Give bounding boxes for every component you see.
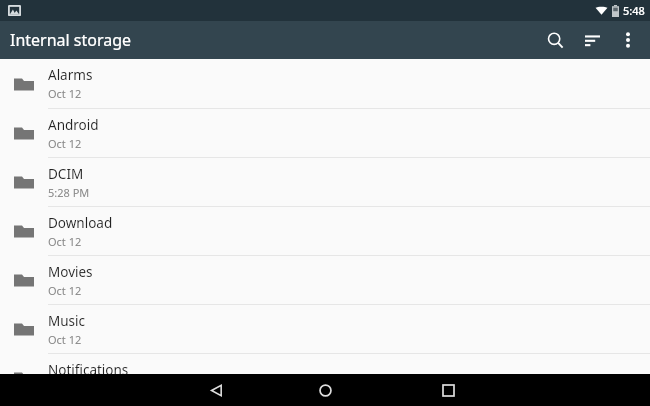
staticText: 5:28 PM [48,185,90,200]
staticText: Notifications [48,361,129,379]
staticText: Music [48,312,86,330]
button[interactable]: Android [0,109,650,157]
button[interactable]: Music [0,305,650,353]
staticText: Download [48,214,113,232]
staticText: Oct 12 [48,283,82,298]
staticText: Android [48,116,99,134]
button[interactable]: Search [536,21,574,59]
staticText: Oct 12 [48,136,82,151]
staticText: Oct 12 [48,86,82,101]
button[interactable]: Notifications [0,354,650,402]
button[interactable]: Movies [0,256,650,304]
staticText: Oct 12 [48,234,82,249]
button[interactable]: Home [309,374,341,406]
staticText: Internal storage [10,29,132,51]
button[interactable]: Download [0,207,650,255]
staticText: Movies [48,263,93,281]
staticText: DCIM [48,165,84,183]
button[interactable]: DCIM [0,158,650,206]
staticText: Oct 12 [48,332,82,347]
button[interactable]: Alarms [0,59,650,108]
staticText: 5:48 [623,3,645,18]
button[interactable]: More options [610,22,646,58]
button[interactable]: Back [200,374,232,406]
staticText: Alarms [48,66,93,84]
button[interactable]: Sort [574,22,610,58]
button[interactable]: Recents [432,374,464,406]
